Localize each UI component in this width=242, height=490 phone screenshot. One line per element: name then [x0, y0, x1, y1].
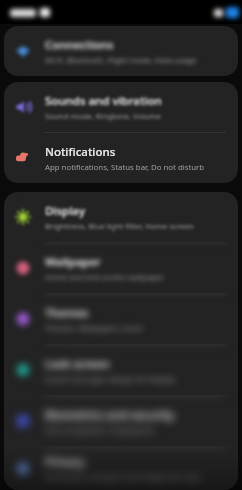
staticText: Brightness, Blue light filter, Home scre… [45, 221, 194, 232]
button[interactable]: Connections [4, 26, 238, 76]
button[interactable]: Privacy [4, 447, 238, 490]
staticText: Themes [45, 305, 89, 321]
button[interactable]: Wallpaper [4, 243, 238, 293]
staticText: Wallpaper [45, 254, 101, 270]
button[interactable]: Lock screen [4, 345, 238, 395]
staticText: Sounds and vibration [45, 93, 162, 109]
staticText: Connections [45, 37, 114, 53]
staticText: Themes, Wallpapers, Icons [45, 323, 143, 334]
staticText: Privacy [45, 454, 85, 470]
staticText: Wi-Fi, Bluetooth, Flight mode, Data usag… [45, 55, 197, 66]
staticText: Lock screen [45, 356, 110, 372]
button[interactable]: Sounds and vibration [4, 82, 238, 132]
staticText: Home and lock screen wallpaper [45, 272, 165, 283]
staticText: Screen lock type, Always On Display [45, 374, 176, 385]
button[interactable]: Biometrics and security [4, 396, 238, 446]
staticText: Sound mode, Ringtone, Volume [45, 111, 161, 122]
button[interactable]: Notifications [4, 133, 238, 183]
button[interactable]: Themes [4, 294, 238, 344]
staticText: Display [45, 203, 85, 219]
staticText: Biometrics and security [45, 407, 175, 423]
button[interactable]: Display [4, 192, 238, 242]
staticText: App notifications, Status bar, Do not di… [45, 162, 205, 173]
staticText: Notifications [45, 144, 116, 160]
